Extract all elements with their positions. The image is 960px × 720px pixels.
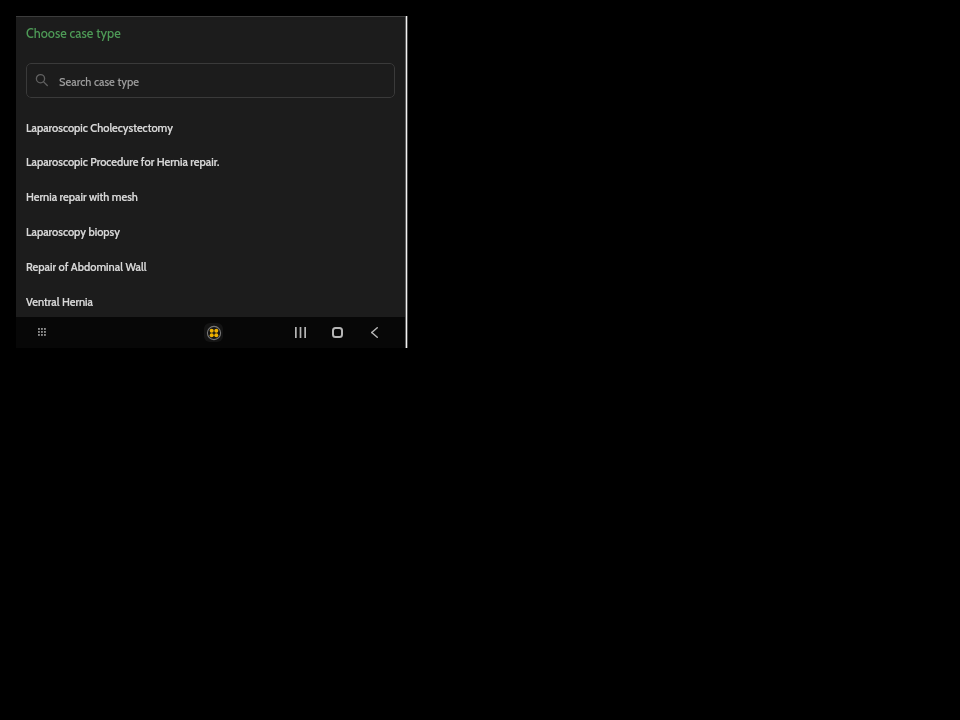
staticText: Hernia repair with mesh — [26, 190, 138, 203]
button[interactable]: Recent apps — [288, 320, 313, 345]
button[interactable]: Laparoscopic Cholecystectomy — [16, 110, 405, 145]
staticText: Laparoscopic Procedure for Hernia repair… — [26, 155, 220, 168]
button[interactable]: Laparoscopy biopsy — [16, 214, 405, 249]
button[interactable]: Ventral Hernia — [16, 284, 405, 319]
staticText: Search case type — [59, 75, 140, 89]
button[interactable]: Laparoscopic Procedure for Hernia repair… — [16, 144, 405, 179]
button[interactable]: Apps — [30, 320, 55, 345]
button[interactable]: Home — [325, 320, 350, 345]
button[interactable]: Hernia repair with mesh — [16, 179, 405, 214]
button[interactable]: Choose case type — [26, 26, 121, 41]
button[interactable]: Search case type — [26, 63, 395, 98]
staticText: Laparoscopy biopsy — [26, 225, 121, 238]
staticText: Repair of Abdominal Wall — [26, 260, 147, 273]
staticText: Ventral Hernia — [26, 295, 94, 308]
button[interactable]: Multi window — [201, 320, 226, 345]
button[interactable]: Back — [362, 320, 387, 345]
staticText: Choose case type — [26, 26, 121, 41]
button[interactable]: Repair of Abdominal Wall — [16, 249, 405, 284]
staticText: Laparoscopic Cholecystectomy — [26, 121, 173, 134]
